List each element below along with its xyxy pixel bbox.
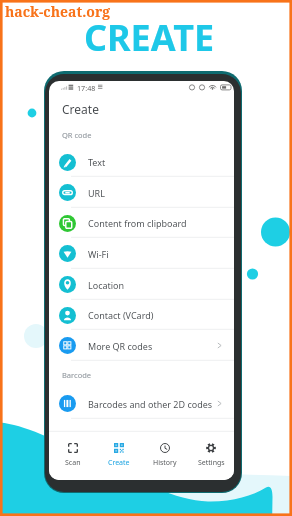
- staticText: Barcode: [62, 370, 92, 380]
- button[interactable]: URL: [49, 177, 234, 208]
- staticText: Wi-Fi: [88, 248, 224, 260]
- button[interactable]: Location: [49, 269, 234, 300]
- staticText: History: [153, 458, 177, 468]
- staticText: Contact (VCard): [88, 309, 224, 321]
- staticText: hack-cheat.org: [5, 2, 111, 21]
- button[interactable]: Create: [96, 433, 142, 480]
- button[interactable]: Settings: [188, 433, 234, 480]
- button[interactable]: Content from clipboard: [49, 208, 234, 238]
- staticText: CREATE: [3, 13, 292, 62]
- button[interactable]: Contact (VCard): [49, 300, 234, 330]
- button[interactable]: Wi-Fi: [49, 238, 234, 269]
- staticText: Settings: [198, 458, 225, 468]
- button[interactable]: History: [142, 433, 188, 480]
- button[interactable]: More QR codes: [49, 330, 234, 361]
- staticText: QR code: [62, 130, 92, 140]
- staticText: URL: [88, 187, 224, 199]
- staticText: More QR codes: [88, 340, 215, 352]
- button[interactable]: Text: [49, 147, 234, 177]
- staticText: Location: [88, 279, 224, 291]
- staticText: Create: [62, 101, 99, 117]
- staticText: Create: [108, 458, 130, 468]
- staticText: Barcodes and other 2D codes: [88, 398, 215, 410]
- button[interactable]: Scan: [49, 433, 96, 480]
- staticText: Content from clipboard: [88, 217, 224, 229]
- staticText: Scan: [65, 458, 81, 468]
- staticText: Text: [88, 156, 224, 168]
- button[interactable]: Barcodes and other 2D codes: [49, 388, 234, 419]
- staticText: 17:48: [77, 83, 96, 93]
